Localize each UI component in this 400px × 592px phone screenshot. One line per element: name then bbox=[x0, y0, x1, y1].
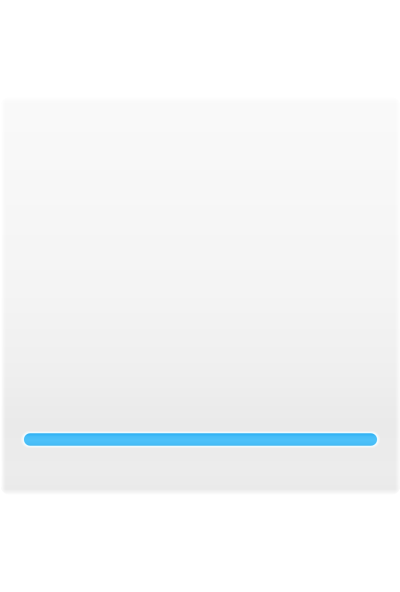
button[interactable]: Light switch bbox=[0, 97, 399, 495]
